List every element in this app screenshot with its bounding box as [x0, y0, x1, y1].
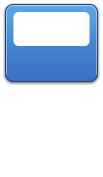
- button[interactable]: Card: [5, 4, 98, 82]
